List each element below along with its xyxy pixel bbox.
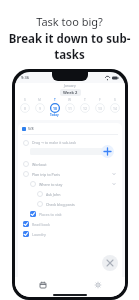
staticText: 12 bbox=[83, 106, 87, 111]
button[interactable]: S bbox=[107, 98, 122, 117]
button[interactable]: Laundry bbox=[22, 229, 118, 239]
staticText: 8 bbox=[24, 106, 26, 111]
button[interactable]: Calendar bbox=[15, 277, 70, 292]
staticText: Where to stay bbox=[39, 182, 63, 187]
button[interactable]: Plan trip to Paris bbox=[22, 169, 118, 179]
button[interactable]: Drag → to make it sub-task bbox=[22, 138, 118, 147]
staticText: January bbox=[64, 84, 76, 88]
staticText: Plan trip to Paris bbox=[32, 172, 60, 177]
button[interactable]: Add sub-task bbox=[101, 145, 114, 158]
staticText: W bbox=[68, 98, 71, 102]
button[interactable]: Places to visit bbox=[29, 209, 118, 219]
staticText: Task too big? bbox=[36, 14, 103, 29]
button[interactable]: S bbox=[18, 98, 32, 117]
staticText: 5/8 bbox=[28, 126, 34, 131]
staticText: 13 bbox=[98, 106, 102, 111]
button[interactable]: Settings bbox=[70, 277, 125, 292]
staticText: Places to visit bbox=[39, 212, 62, 217]
staticText: Break it down to sub-tasks bbox=[0, 31, 139, 63]
button[interactable]: T bbox=[47, 98, 62, 117]
staticText: 9:36 bbox=[21, 75, 29, 80]
staticText: Today bbox=[50, 113, 59, 117]
button[interactable]: Check blog posts bbox=[36, 199, 118, 209]
button[interactable]: W bbox=[62, 98, 77, 117]
staticText: Drag → to make it sub-task bbox=[32, 140, 77, 145]
button[interactable]: Read book bbox=[22, 219, 118, 229]
staticText: Check blog posts bbox=[46, 202, 75, 207]
button[interactable]: Close bbox=[102, 255, 118, 271]
button[interactable]: Where to stay bbox=[29, 179, 118, 189]
staticText: Week 2 bbox=[63, 90, 78, 95]
button[interactable]: Week 2 bbox=[63, 90, 78, 95]
button[interactable]: Workout bbox=[22, 159, 118, 169]
staticText: Workout bbox=[32, 162, 47, 167]
staticText: 9 bbox=[39, 106, 41, 111]
staticText: 10 bbox=[53, 106, 57, 111]
button[interactable]: T bbox=[77, 98, 92, 117]
staticText: T bbox=[84, 98, 86, 102]
staticText: T bbox=[54, 98, 56, 102]
staticText: Read book bbox=[32, 222, 50, 227]
staticText: F bbox=[99, 98, 101, 102]
staticText: 11 bbox=[68, 106, 72, 111]
staticText: Laundry bbox=[32, 232, 46, 237]
staticText: 14 bbox=[113, 106, 117, 111]
staticText: S bbox=[24, 98, 26, 102]
button[interactable]: Ask John bbox=[36, 189, 118, 199]
staticText: S bbox=[114, 98, 116, 102]
staticText: Ask John bbox=[46, 192, 61, 197]
staticText: M bbox=[38, 98, 41, 102]
button[interactable]: F bbox=[92, 98, 107, 117]
button[interactable]: M bbox=[32, 98, 47, 117]
